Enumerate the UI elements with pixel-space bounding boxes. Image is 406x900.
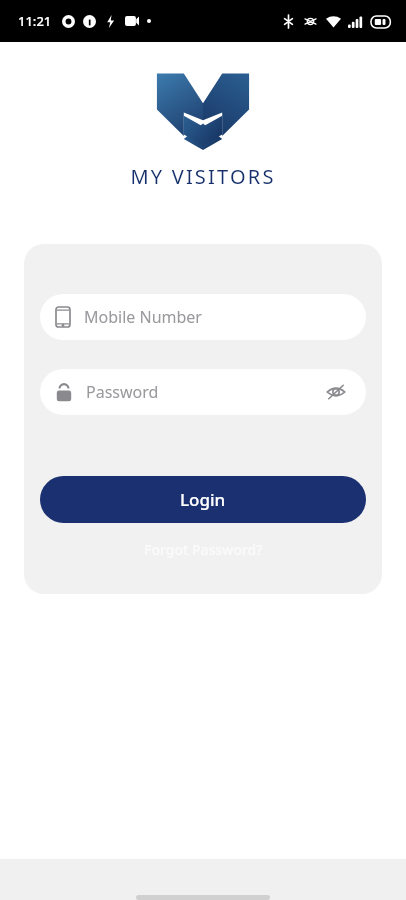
staticText: Password: [86, 381, 322, 403]
staticText: MY VISITORS: [130, 163, 276, 190]
staticText: Forgot Password?: [144, 540, 263, 559]
button[interactable]: Mobile Number: [40, 294, 366, 340]
button[interactable]: Password: [40, 369, 366, 415]
staticText: 11:21: [18, 12, 52, 30]
staticText: Login: [180, 488, 226, 511]
staticText: Mobile Number: [84, 306, 350, 328]
button[interactable]: Show password: [322, 378, 350, 406]
button[interactable]: Login: [40, 476, 366, 523]
